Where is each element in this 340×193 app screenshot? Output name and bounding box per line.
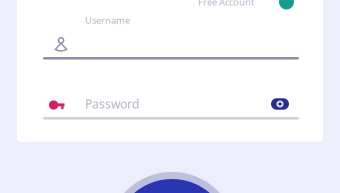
staticText: Username <box>85 14 130 26</box>
button[interactable]: Sign in <box>107 172 237 193</box>
staticText: Password <box>85 96 139 112</box>
button[interactable]: Free Account <box>198 0 294 9</box>
button[interactable]: Password <box>43 99 299 123</box>
staticText: Free Account <box>198 0 254 8</box>
button[interactable]: Username <box>43 16 323 62</box>
button[interactable]: Show password <box>271 98 289 110</box>
